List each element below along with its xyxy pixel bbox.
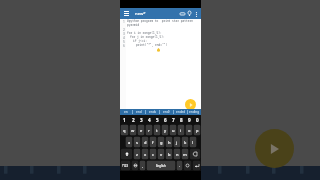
staticText: ?123 bbox=[122, 164, 129, 168]
staticText: r bbox=[148, 128, 150, 133]
staticText: t bbox=[156, 128, 158, 133]
button[interactable]: g bbox=[157, 136, 165, 148]
button[interactable]: c bbox=[149, 148, 157, 160]
staticText: 3 bbox=[140, 117, 143, 123]
staticText: q bbox=[123, 128, 126, 133]
staticText: a bbox=[128, 140, 131, 145]
button[interactable]: Enter bbox=[192, 160, 201, 171]
button[interactable]: y bbox=[161, 124, 169, 136]
staticText: 6 bbox=[123, 44, 125, 48]
button[interactable]: 5 bbox=[153, 115, 161, 124]
button[interactable]: Run program bbox=[185, 99, 196, 110]
staticText: 6 bbox=[164, 117, 167, 123]
button[interactable]: n bbox=[173, 148, 181, 160]
button[interactable]: w bbox=[129, 124, 137, 136]
staticText: y bbox=[164, 128, 167, 133]
button[interactable]: More options bbox=[193, 11, 199, 17]
button[interactable]: f bbox=[149, 136, 157, 148]
button[interactable]: ended bbox=[174, 109, 187, 115]
button[interactable]: h bbox=[165, 136, 173, 148]
button[interactable]: Backspace bbox=[189, 148, 201, 160]
staticText: m bbox=[183, 152, 187, 157]
staticText: print("*", end="") bbox=[136, 43, 168, 47]
staticText: 9 bbox=[188, 117, 191, 123]
button[interactable]: en bbox=[120, 109, 132, 115]
button[interactable]: a bbox=[125, 136, 133, 148]
button[interactable]: Navigation menu bbox=[123, 10, 130, 17]
staticText: end bbox=[136, 110, 142, 114]
staticText: new* bbox=[135, 11, 146, 17]
staticText: pyarmid bbox=[127, 23, 140, 27]
button[interactable]: v bbox=[157, 148, 165, 160]
button[interactable]: b bbox=[165, 148, 173, 160]
button[interactable]: 3 bbox=[137, 115, 145, 124]
staticText: 1 bbox=[123, 117, 126, 123]
staticText: 4 bbox=[148, 117, 151, 123]
button[interactable]: ending bbox=[188, 109, 201, 115]
button[interactable]: l bbox=[189, 136, 197, 148]
button[interactable]: m bbox=[181, 148, 189, 160]
button[interactable]: q bbox=[120, 124, 129, 136]
button[interactable]: u bbox=[169, 124, 177, 136]
button[interactable]: j bbox=[173, 136, 181, 148]
staticText: o bbox=[188, 128, 191, 133]
button[interactable]: s bbox=[133, 136, 141, 148]
staticText: ends bbox=[149, 110, 157, 114]
staticText: x bbox=[144, 152, 147, 157]
staticText: c bbox=[152, 152, 154, 157]
staticText: k bbox=[184, 140, 187, 145]
button[interactable]: end) bbox=[160, 109, 173, 115]
staticText: , bbox=[142, 163, 144, 168]
button[interactable]: . bbox=[176, 160, 183, 171]
button[interactable]: Save file bbox=[186, 10, 193, 17]
button[interactable]: e bbox=[137, 124, 145, 136]
staticText: l bbox=[192, 140, 194, 145]
button[interactable]: k bbox=[181, 136, 189, 148]
staticText: 4 bbox=[123, 36, 125, 40]
button[interactable]: p bbox=[193, 124, 201, 136]
button[interactable]: Shift bbox=[120, 148, 133, 160]
button[interactable]: z bbox=[133, 148, 141, 160]
staticText: #python program to print star pattern li… bbox=[127, 19, 201, 23]
button[interactable]: end bbox=[133, 109, 145, 115]
button[interactable]: 1 bbox=[120, 115, 129, 124]
button[interactable]: x bbox=[141, 148, 149, 160]
button[interactable]: Change keyboard bbox=[131, 160, 139, 171]
button[interactable]: 7 bbox=[169, 115, 177, 124]
staticText: w bbox=[131, 128, 135, 133]
staticText: p bbox=[196, 128, 199, 133]
staticText: h bbox=[168, 140, 171, 145]
button[interactable]: r bbox=[145, 124, 153, 136]
button[interactable]: 0 bbox=[193, 115, 201, 124]
staticText: b bbox=[168, 152, 171, 157]
staticText: for i in range(1,5): bbox=[127, 31, 162, 35]
staticText: 5 bbox=[123, 40, 125, 44]
button[interactable]: Open file bbox=[179, 10, 186, 17]
button[interactable]: , bbox=[139, 160, 146, 171]
button[interactable]: Emoji bbox=[183, 160, 192, 171]
staticText: v bbox=[160, 152, 163, 157]
staticText: z bbox=[136, 152, 138, 157]
staticText: ending bbox=[189, 110, 200, 114]
button[interactable]: Play bbox=[255, 129, 294, 168]
staticText: u bbox=[172, 128, 175, 133]
button[interactable]: i bbox=[177, 124, 185, 136]
staticText: end) bbox=[163, 110, 170, 114]
button[interactable]: 2 bbox=[129, 115, 137, 124]
button[interactable]: o bbox=[185, 124, 193, 136]
button[interactable]: d bbox=[141, 136, 149, 148]
button[interactable]: t bbox=[153, 124, 161, 136]
button[interactable]: 8 bbox=[177, 115, 185, 124]
staticText: j bbox=[176, 140, 178, 145]
staticText: 8 bbox=[180, 117, 183, 123]
staticText: for j in range(1,5): bbox=[130, 35, 165, 39]
button[interactable]: ?123 bbox=[120, 160, 131, 171]
button[interactable]: 9 bbox=[185, 115, 193, 124]
button[interactable]: 6 bbox=[161, 115, 169, 124]
button[interactable]: ends bbox=[146, 109, 159, 115]
staticText: 5 bbox=[156, 117, 159, 123]
staticText: 7 bbox=[172, 117, 175, 123]
staticText: 2 bbox=[132, 117, 135, 123]
button[interactable]: English bbox=[146, 160, 176, 171]
button[interactable]: 4 bbox=[145, 115, 153, 124]
